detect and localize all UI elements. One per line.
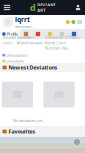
- staticText: Newest Deviations: [8, 64, 57, 71]
- staticText: since: [2, 40, 11, 45]
- staticText: Deviant: [2, 35, 15, 40]
- staticText: ART: [37, 7, 45, 13]
- staticText: No deviations yet: [13, 118, 42, 123]
- staticText: deviantart: [15, 24, 32, 29]
- button[interactable]: Gallery: [20, 29, 32, 39]
- button[interactable]: Favourites: [0, 126, 85, 137]
- button[interactable]: Profile: [0, 29, 20, 39]
- staticText: Deviousness: [6, 53, 28, 58]
- staticText: Favourites: [8, 128, 35, 135]
- staticText: iqrrt: [15, 15, 30, 24]
- staticText: Needs Core Membership: [44, 40, 67, 51]
- button[interactable]: Deviation: [43, 81, 74, 107]
- button[interactable]: Deviation: [2, 81, 33, 107]
- button[interactable]: Newest Deviations: [0, 63, 85, 72]
- staticText: Profile: [7, 31, 18, 37]
- button[interactable]: Favourites: [32, 29, 44, 39]
- button[interactable]: Close: [74, 139, 80, 145]
- staticText: d: [30, 1, 36, 14]
- button[interactable]: Critiques: [56, 29, 68, 39]
- button[interactable]: Journal: [44, 29, 56, 39]
- staticText: deviantart: [16, 35, 33, 40]
- staticText: Deviations: [6, 58, 24, 64]
- staticText: Page Views: [6, 64, 25, 69]
- button[interactable]: Menu: [0, 0, 14, 15]
- button[interactable]: Notes: [68, 29, 80, 39]
- staticText: DEVIANT: [37, 2, 55, 7]
- button[interactable]: Account: [71, 0, 85, 15]
- staticText: Deviant for 12 Years: [44, 35, 79, 40]
- staticText: Male/Unknown: [16, 40, 42, 45]
